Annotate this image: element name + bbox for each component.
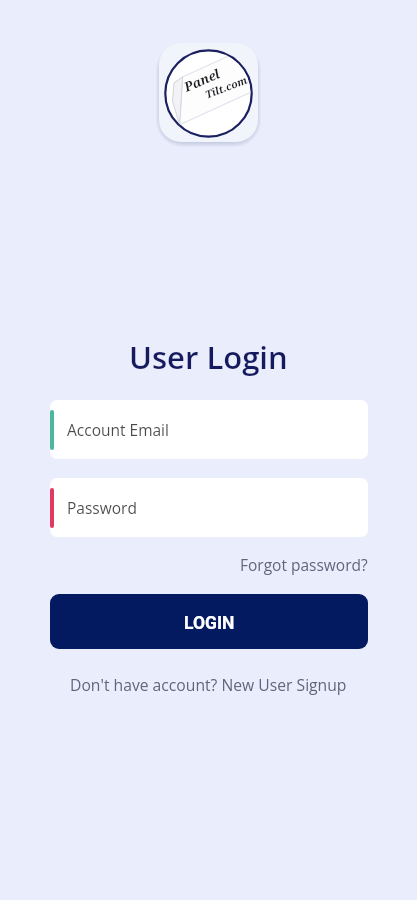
staticText: Panel [181,64,223,96]
staticText: Forgot password? [240,554,368,575]
button[interactable]: Password [50,478,368,537]
button[interactable]: Forgot password? [240,554,368,575]
staticText: User Login [129,336,288,378]
staticText: LOGIN [184,613,235,634]
staticText: Tilt.com [203,72,250,102]
staticText: Account Email [67,419,169,440]
button[interactable]: Account Email [50,400,368,459]
staticText: Don't have account? New User Signup [70,674,347,695]
button[interactable]: LOGIN [50,594,368,649]
staticText: Password [67,497,137,518]
button[interactable]: Don't have account? New User Signup [70,674,347,695]
